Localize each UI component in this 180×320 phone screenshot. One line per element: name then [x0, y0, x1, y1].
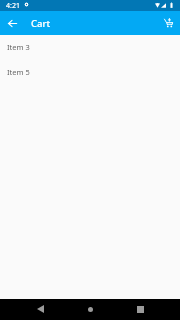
button[interactable]: Recent apps [130, 299, 150, 319]
button[interactable]: Navigate up [0, 11, 24, 35]
button[interactable]: Item 5 [0, 59, 180, 84]
staticText: Cart [31, 17, 51, 30]
button[interactable]: Back [30, 299, 50, 319]
button[interactable]: Home [80, 299, 100, 319]
button[interactable]: Item 3 [0, 34, 180, 59]
staticText: Item 3 [7, 42, 30, 52]
button[interactable]: Add to cart [156, 11, 180, 35]
staticText: Item 5 [7, 67, 30, 77]
staticText: 4:21 [6, 1, 20, 11]
